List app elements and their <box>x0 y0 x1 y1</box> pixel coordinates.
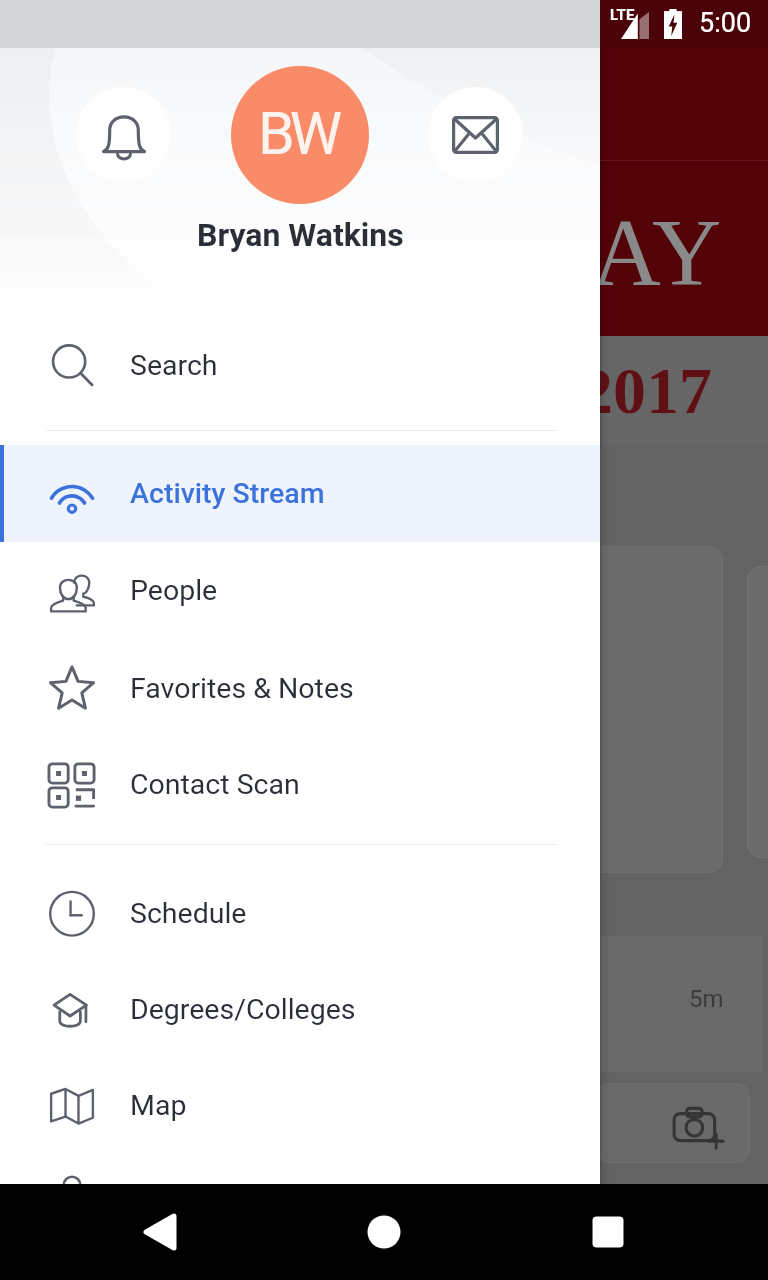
staticText: TODAY <box>396 199 722 305</box>
staticText: People <box>130 574 218 607</box>
staticText: Search <box>130 349 218 382</box>
staticText: Favorites & Notes <box>130 672 354 705</box>
staticText: Bryan Watkins <box>197 216 404 254</box>
button[interactable]: Schedule <box>0 865 600 962</box>
staticText: 5:00 <box>699 7 752 39</box>
staticText: 5m <box>689 985 724 1013</box>
staticText: Schedule <box>130 897 247 930</box>
staticText: Contact Scan <box>130 768 300 801</box>
staticText: BW <box>258 99 338 168</box>
button[interactable]: Messages <box>428 87 523 182</box>
button[interactable]: Search <box>0 317 600 414</box>
button[interactable]: Map <box>0 1057 600 1154</box>
button[interactable]: More <box>48 1166 96 1184</box>
button[interactable]: People <box>0 542 600 639</box>
button[interactable]: BW <box>231 66 369 204</box>
button[interactable]: Home <box>336 1184 432 1280</box>
button[interactable]: Favorites & Notes <box>0 640 600 737</box>
button[interactable]: Recents <box>560 1184 656 1280</box>
staticText: Map <box>130 1089 187 1122</box>
button[interactable]: Degrees/Colleges <box>0 961 600 1058</box>
staticText: LTE <box>610 6 635 24</box>
button[interactable]: Back <box>112 1184 208 1280</box>
staticText: 2017 <box>580 354 712 427</box>
staticText: Activity Stream <box>130 477 325 510</box>
button[interactable]: Activity Stream <box>0 445 600 542</box>
button[interactable]: Notifications <box>76 87 171 182</box>
staticText: Degrees/Colleges <box>130 993 356 1026</box>
button[interactable]: Contact Scan <box>0 736 600 833</box>
